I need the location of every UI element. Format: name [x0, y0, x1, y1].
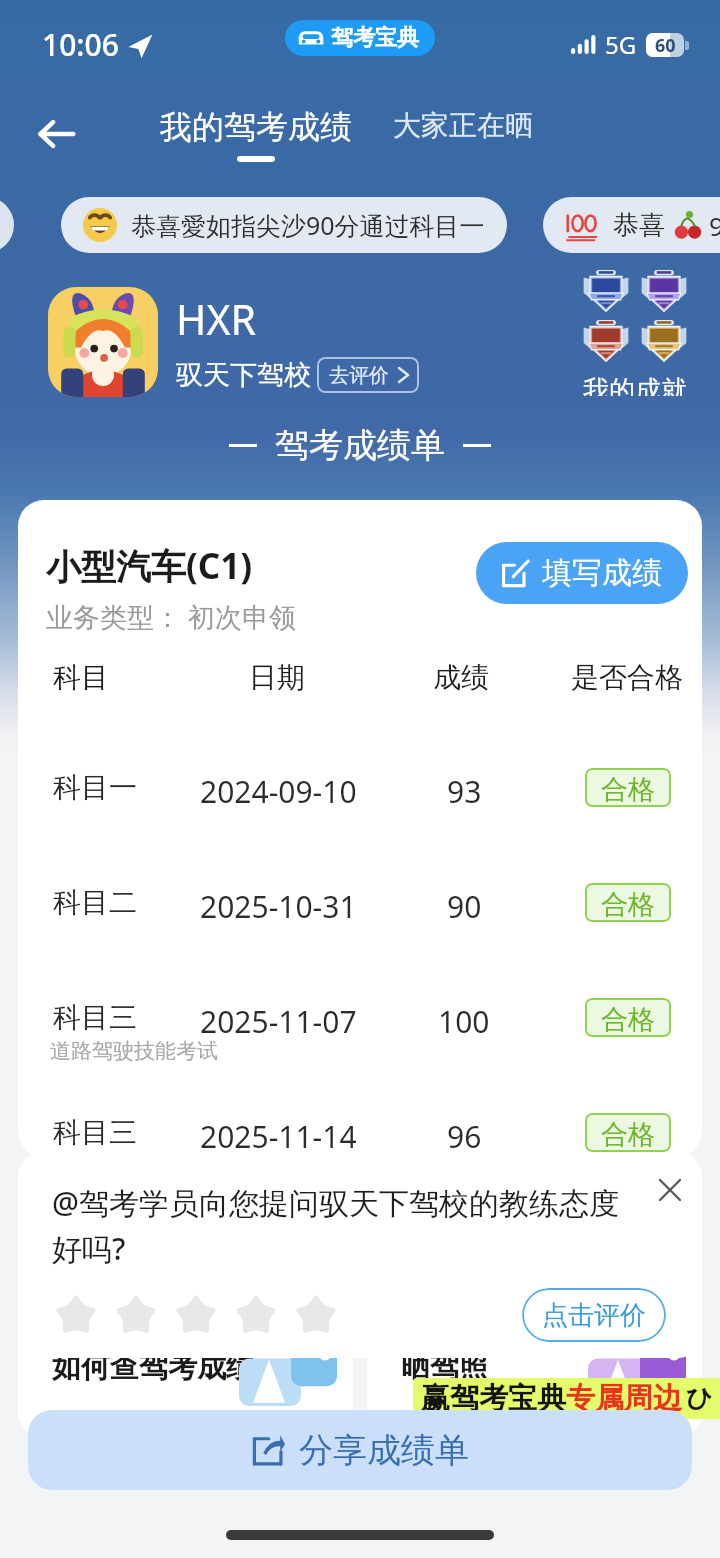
- staticText: 合格: [601, 888, 655, 917]
- staticText: 科目三: [53, 1115, 137, 1150]
- button[interactable]: Profile avatar: [48, 287, 158, 397]
- button[interactable]: 点击评价: [522, 1288, 666, 1342]
- staticText: 90: [447, 886, 482, 925]
- staticText: 科目: [53, 660, 109, 694]
- staticText: 驾考成绩单: [275, 424, 445, 467]
- staticText: 100: [438, 1001, 490, 1040]
- staticText: ひ: [686, 1382, 713, 1415]
- staticText: 科目三: [53, 1000, 137, 1035]
- staticText: 日期: [249, 660, 305, 694]
- staticText: 填写成绩: [542, 554, 662, 592]
- button[interactable]: 恭喜: [543, 197, 720, 253]
- staticText: 赢驾考宝典: [421, 1380, 566, 1417]
- staticText: @驾考学员向您提问驭天下驾校的教练态度好吗?: [52, 1182, 632, 1268]
- staticText: 专属周边: [566, 1380, 682, 1417]
- staticText: 2025-11-07: [200, 1001, 357, 1040]
- button[interactable]: 大家正在晒: [389, 107, 537, 142]
- staticText: 大家正在晒: [393, 108, 533, 143]
- staticText: 业务类型： 初次申领: [46, 598, 297, 635]
- button[interactable]: 去评价: [317, 357, 419, 393]
- staticText: 去评价: [329, 363, 389, 388]
- staticText: 我的成就: [583, 374, 687, 396]
- staticText: 如何查驾考成绩: [52, 1349, 255, 1386]
- staticText: 96: [447, 1116, 482, 1155]
- button[interactable]: 填写成绩: [476, 542, 688, 604]
- staticText: 科目二: [53, 885, 137, 920]
- staticText: 2025-11-14: [200, 1116, 357, 1155]
- button[interactable]: 驾考宝典: [285, 20, 435, 56]
- staticText: 合格: [601, 1003, 655, 1032]
- staticText: 恭喜: [613, 209, 665, 242]
- staticText: 恭喜愛如指尖沙90分通过科目一: [131, 208, 485, 242]
- staticText: 合格: [601, 1118, 655, 1147]
- staticText: 2025-10-31: [200, 886, 357, 925]
- staticText: 60: [655, 33, 676, 57]
- button[interactable]: 分享成绩单: [28, 1410, 692, 1490]
- staticText: 5G: [605, 28, 637, 61]
- button[interactable]: 科目一: [18, 770, 702, 809]
- button[interactable]: 恭喜愛如指尖沙90分通过科目一: [61, 197, 507, 253]
- button[interactable]: 科目二: [18, 885, 702, 924]
- staticText: 晒驾照: [401, 1349, 488, 1386]
- staticText: 我的驾考成绩: [160, 107, 352, 147]
- staticText: 是否合格: [571, 660, 683, 694]
- button[interactable]: 赢驾考宝典: [413, 1378, 720, 1419]
- staticText: 驭天下驾校: [176, 358, 311, 392]
- button[interactable]: Close: [644, 1164, 696, 1216]
- staticText: 成绩: [433, 660, 489, 694]
- staticText: 2024-09-10: [200, 771, 357, 810]
- button[interactable]: 晒驾照: [367, 1284, 702, 1434]
- button[interactable]: 如何查驾考成绩: [18, 1284, 353, 1434]
- staticText: 驾考宝典: [331, 24, 419, 52]
- staticText: 93: [447, 771, 482, 810]
- staticText: 小型汽车(C1): [46, 542, 253, 590]
- staticText: 道路驾驶技能考试: [50, 1038, 310, 1064]
- staticText: 10:06: [42, 24, 119, 65]
- button[interactable]: 科目三: [18, 1115, 702, 1154]
- staticText: 96: [709, 208, 720, 243]
- staticText: 点击评价: [542, 1299, 646, 1332]
- staticText: HXR: [176, 291, 256, 347]
- staticText: 分享成绩单: [299, 1429, 469, 1472]
- staticText: 科目一: [53, 770, 137, 805]
- button[interactable]: My achievements: [580, 268, 690, 396]
- staticText: 合格: [601, 773, 655, 802]
- button[interactable]: Back: [26, 104, 86, 164]
- button[interactable]: 我的驾考成绩: [156, 107, 356, 162]
- button[interactable]: 科目三: [18, 1000, 702, 1039]
